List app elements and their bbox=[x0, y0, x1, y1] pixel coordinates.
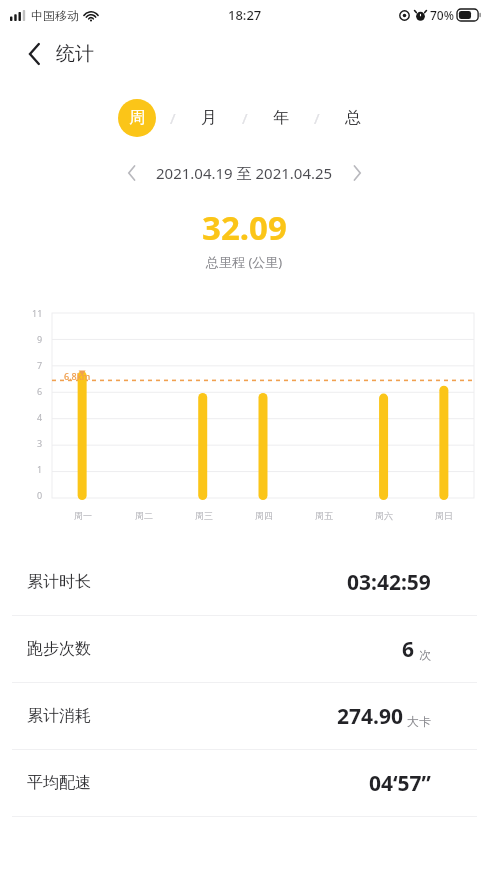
staticText: 11 bbox=[32, 307, 43, 319]
staticText: 9 bbox=[37, 333, 43, 345]
staticText: 周一 bbox=[74, 510, 92, 521]
staticText: 274.90 bbox=[337, 702, 403, 731]
button[interactable]: Previous week bbox=[116, 157, 148, 189]
button[interactable]: Next week bbox=[341, 157, 373, 189]
button[interactable]: 总 bbox=[334, 99, 372, 137]
staticText: 0 bbox=[37, 489, 43, 501]
staticText: 6 bbox=[402, 635, 415, 664]
staticText: 中国移动 bbox=[31, 8, 79, 23]
staticText: 6 bbox=[37, 385, 43, 397]
staticText: 04‘57” bbox=[369, 769, 431, 798]
button[interactable]: 年 bbox=[262, 99, 300, 137]
button[interactable]: Back bbox=[18, 37, 52, 71]
button[interactable]: 月 bbox=[190, 99, 228, 137]
staticText: 总里程 (公里) bbox=[206, 253, 283, 271]
staticText: 累计时长 bbox=[27, 572, 91, 592]
staticText: 周五 bbox=[315, 510, 333, 521]
staticText: 大卡 bbox=[407, 714, 431, 729]
staticText: / bbox=[170, 108, 176, 128]
staticText: 32.09 bbox=[202, 205, 287, 250]
staticText: 周 bbox=[129, 108, 145, 128]
staticText: 03:42:59 bbox=[347, 568, 431, 597]
staticText: 跑步次数 bbox=[27, 639, 91, 659]
staticText: 次 bbox=[419, 647, 431, 662]
button[interactable]: 平均配速 bbox=[0, 750, 489, 816]
button[interactable]: 累计消耗 bbox=[0, 683, 489, 749]
staticText: 2021.04.19 至 2021.04.25 bbox=[156, 163, 333, 183]
button[interactable]: 累计时长 bbox=[0, 549, 489, 615]
staticText: 70% bbox=[430, 7, 454, 23]
staticText: 7 bbox=[37, 359, 43, 371]
staticText: 周四 bbox=[255, 510, 273, 521]
staticText: 统计 bbox=[56, 42, 94, 66]
staticText: 1 bbox=[37, 463, 43, 475]
staticText: 总 bbox=[345, 108, 361, 128]
staticText: 6.8km bbox=[64, 370, 91, 382]
staticText: / bbox=[242, 108, 248, 128]
staticText: 平均配速 bbox=[27, 773, 91, 793]
staticText: 周三 bbox=[195, 510, 213, 521]
staticText: 4 bbox=[37, 411, 43, 423]
staticText: 3 bbox=[37, 437, 43, 449]
staticText: 月 bbox=[201, 108, 217, 128]
staticText: 周二 bbox=[135, 510, 153, 521]
button[interactable]: 周 bbox=[118, 99, 156, 137]
staticText: 周六 bbox=[375, 510, 393, 521]
staticText: 18:27 bbox=[228, 6, 262, 24]
staticText: 周日 bbox=[435, 510, 453, 521]
button[interactable]: 跑步次数 bbox=[0, 616, 489, 682]
staticText: 累计消耗 bbox=[27, 706, 91, 726]
staticText: / bbox=[314, 108, 320, 128]
staticText: 年 bbox=[273, 108, 289, 128]
